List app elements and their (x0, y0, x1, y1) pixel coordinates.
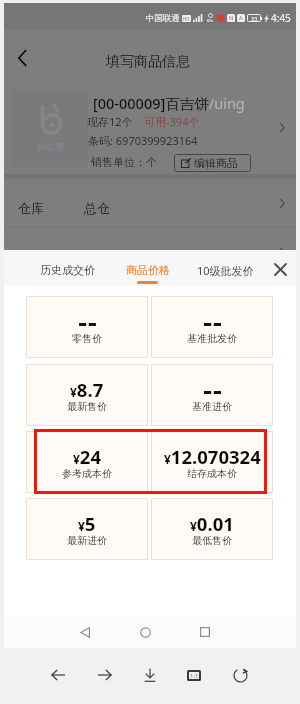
staticText: 商品价格 (126, 263, 170, 277)
button[interactable]: 项目 (4, 228, 296, 276)
button[interactable]: Back (44, 661, 72, 689)
button[interactable]: Forward (91, 661, 119, 689)
button[interactable]: 零售价 (26, 296, 148, 358)
staticText: 10级批发价 (197, 263, 254, 278)
staticText: 中国联通 (146, 13, 180, 24)
button[interactable]: Actual size (180, 661, 208, 689)
staticText: 最低售价 (192, 534, 232, 547)
staticText: 1:1 (190, 672, 199, 680)
staticText: 历史成交价 (40, 263, 95, 277)
staticText: 最新售价 (67, 400, 107, 413)
staticText: 项目 (18, 249, 44, 265)
button[interactable]: 基准进价 (151, 364, 273, 426)
button[interactable]: 历史成交价 (27, 250, 107, 286)
staticText: 销售单位：个 (91, 155, 157, 169)
staticText: K/s (207, 18, 213, 23)
button[interactable]: Reload (226, 661, 254, 689)
button[interactable]: Home (131, 618, 159, 646)
button[interactable]: 编辑商品 (174, 154, 251, 172)
staticText: 零售价 (72, 332, 102, 345)
button[interactable]: Download (136, 661, 164, 689)
staticText: ¥8.7 (70, 377, 104, 402)
button[interactable]: 商品价格 (108, 250, 188, 286)
button[interactable]: ¥24 (26, 431, 148, 493)
staticText: 好生意 (37, 141, 64, 152)
staticText: 基准进价 (192, 400, 232, 413)
staticText: ¥12.070324 (164, 444, 261, 469)
button[interactable]: Back (8, 44, 36, 72)
button[interactable]: Close (265, 254, 295, 284)
button[interactable]: 10级批发价 (185, 250, 265, 286)
staticText: [00-00009]百吉饼/uing (93, 93, 245, 113)
staticText: 4:45 (271, 11, 291, 25)
staticText: ¥24 (73, 444, 102, 469)
staticText: A (239, 14, 243, 22)
staticText: 填写商品信息 (106, 53, 190, 71)
staticText: ¥5 (78, 511, 96, 536)
staticText: ¥0.01 (190, 511, 234, 536)
staticText: 可用-394个 (144, 114, 200, 129)
staticText: 结存成本价 (187, 467, 237, 480)
staticText: HD (183, 16, 190, 22)
staticText: 参考成本价 (62, 467, 112, 480)
button[interactable]: ¥8.7 (26, 364, 148, 426)
staticText: 最新进价 (67, 534, 107, 547)
staticText: N (229, 14, 234, 22)
button[interactable]: Recents (191, 618, 219, 646)
button[interactable]: 仓库 (4, 179, 296, 227)
staticText: 基准批发价 (187, 332, 237, 345)
button[interactable]: 基准批发价 (151, 296, 273, 358)
staticText: 编辑商品 (194, 156, 238, 170)
staticText: 现存12个 (87, 114, 133, 129)
button[interactable]: ¥12.070324 (151, 431, 273, 493)
button[interactable]: Back (71, 618, 99, 646)
button[interactable]: ¥0.01 (151, 498, 273, 560)
button[interactable]: ¥5 (26, 498, 148, 560)
staticText: 33 (251, 15, 258, 22)
button[interactable]: 好生意 (4, 81, 296, 174)
staticText: 仓库 (18, 200, 44, 216)
staticText: 条码: 6970399923164 (88, 133, 198, 148)
staticText: 总仓 (84, 200, 110, 216)
